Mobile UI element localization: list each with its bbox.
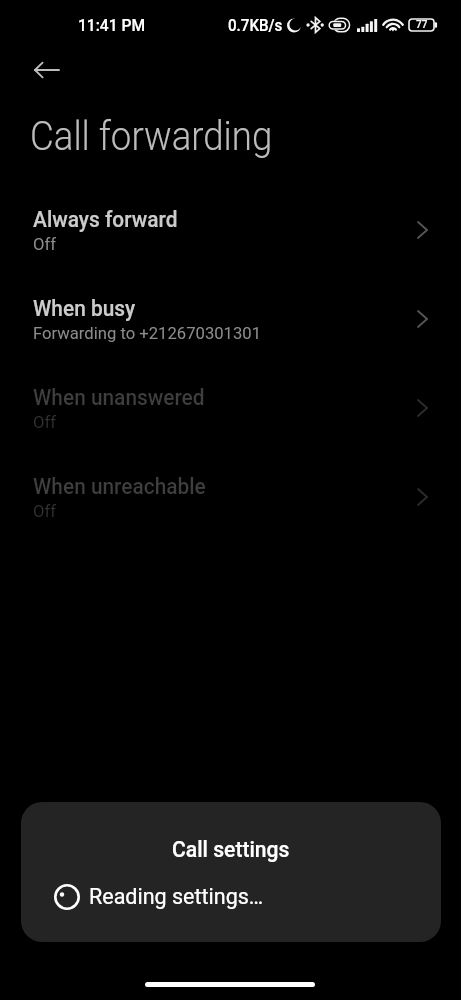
staticText: Off	[33, 235, 57, 254]
button[interactable]: Back	[23, 46, 71, 94]
staticText: When unreachable	[33, 474, 207, 499]
staticText: 77	[416, 19, 428, 31]
staticText: Forwarding to +212670301301	[33, 324, 262, 343]
staticText: Off	[33, 502, 57, 521]
staticText: Reading settings…	[89, 884, 264, 909]
staticText: Call settings	[172, 837, 290, 862]
staticText: Always forward	[33, 207, 177, 232]
button[interactable]: When busy	[0, 292, 461, 381]
staticText: When unanswered	[33, 385, 205, 410]
button[interactable]: When unanswered	[0, 381, 461, 470]
button[interactable]: Always forward	[0, 203, 461, 292]
staticText: Off	[33, 413, 57, 432]
button[interactable]: When unreachable	[0, 470, 461, 559]
staticText: 0.7KB/s	[228, 16, 283, 35]
staticText: Call forwarding	[30, 113, 272, 160]
staticText: 11:41 PM	[78, 16, 145, 35]
staticText: When busy	[33, 296, 136, 321]
